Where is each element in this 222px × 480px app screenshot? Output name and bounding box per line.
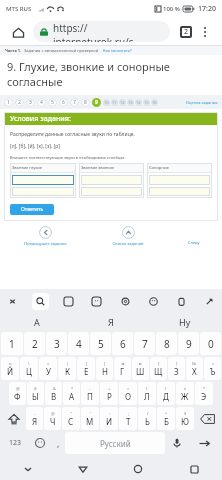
button[interactable]: Tabs: [176, 22, 196, 42]
button[interactable]: ": [62, 407, 80, 430]
button[interactable]: &: [45, 382, 62, 405]
button[interactable]: 4: [37, 98, 46, 107]
button[interactable]: Следу: [188, 240, 200, 245]
button[interactable]: Clipboard: [173, 293, 190, 310]
button[interactable]: }: [168, 357, 185, 380]
button[interactable]: Ну: [148, 313, 222, 330]
button[interactable]: [81, 187, 142, 196]
button[interactable]: Enter: [189, 432, 220, 454]
button[interactable]: А: [0, 313, 74, 330]
button[interactable]: Backspace: [195, 407, 220, 430]
button[interactable]: More options: [196, 23, 214, 41]
button[interactable]: 6: [59, 98, 68, 107]
button[interactable]: *: [63, 382, 80, 405]
button[interactable]: 9: [92, 98, 101, 107]
button[interactable]: Ответить: [10, 204, 54, 215]
button[interactable]: Русский: [65, 432, 165, 454]
button[interactable]: 123: [2, 432, 28, 454]
button[interactable]: $: [176, 407, 194, 430]
staticText: 0: [208, 337, 214, 351]
button[interactable]: Home: [8, 22, 28, 42]
button[interactable]: 8: [81, 98, 90, 107]
button[interactable]: =: [39, 357, 57, 380]
button[interactable]: 9: [178, 332, 199, 355]
staticText: Условия задания:: [10, 114, 71, 124]
button[interactable]: 1: [1, 332, 23, 355]
button[interactable]: Sticker: [88, 293, 105, 310]
button[interactable]: Close: [4, 293, 21, 310]
button[interactable]: Emoji: [28, 432, 52, 454]
button[interactable]: Recents: [166, 458, 222, 480]
button[interactable]: Я: [74, 313, 148, 330]
button[interactable]: \: [20, 357, 38, 380]
button[interactable]: ,: [52, 432, 65, 454]
button[interactable]: 5: [48, 98, 57, 107]
button[interactable]: GIF: [60, 293, 77, 310]
button[interactable]: 14: [135, 99, 142, 106]
button[interactable]: ^: [157, 407, 175, 430]
button[interactable]: /: [138, 407, 156, 430]
button[interactable]: #: [27, 382, 44, 405]
button[interactable]: [149, 175, 210, 185]
button[interactable]: 5: [90, 332, 111, 355]
button[interactable]: 1: [4, 98, 13, 107]
button[interactable]: 2: [15, 98, 24, 107]
button[interactable]: №: [186, 357, 203, 380]
button[interactable]: ): [157, 382, 175, 405]
button[interactable]: Предыдущее задание: [4, 226, 87, 246]
button[interactable]: ]: [96, 357, 113, 380]
button[interactable]: ': [81, 407, 99, 430]
button[interactable]: @: [9, 382, 26, 405]
button[interactable]: ¤: [176, 382, 194, 405]
button[interactable]: 16: [151, 99, 158, 106]
button[interactable]: 12: [119, 99, 126, 106]
button[interactable]: -: [26, 407, 43, 430]
button[interactable]: -: [81, 382, 99, 405]
button[interactable]: @: [44, 407, 61, 430]
button[interactable]: 4: [68, 332, 89, 355]
button[interactable]: Shift: [2, 407, 26, 430]
button[interactable]: Emoji: [145, 293, 162, 310]
button[interactable]: Voice input: [165, 432, 189, 454]
button[interactable]: Settings: [117, 293, 134, 310]
staticText: Ответить: [21, 206, 44, 213]
button[interactable]: ►: [132, 357, 149, 380]
button[interactable]: Hide keyboard: [0, 458, 55, 480]
button[interactable]: 3: [26, 98, 35, 107]
button[interactable]: 7: [70, 98, 79, 107]
button[interactable]: ◄: [114, 357, 131, 380]
button[interactable]: :: [100, 407, 118, 430]
button[interactable]: Home: [110, 458, 166, 480]
button[interactable]: Часть 1.: [5, 46, 217, 55]
button[interactable]: [149, 187, 210, 196]
button[interactable]: [12, 175, 74, 185]
button[interactable]: 15: [143, 99, 150, 106]
button[interactable]: Back: [55, 458, 110, 480]
button[interactable]: ;: [119, 407, 137, 430]
button[interactable]: =: [119, 382, 137, 405]
button[interactable]: ъ: [1, 357, 19, 380]
button[interactable]: Список заданий: [87, 226, 169, 246]
button[interactable]: 3: [46, 332, 67, 355]
button[interactable]: https://interneturok.ru/s: [33, 21, 170, 42]
button[interactable]: 11: [111, 99, 118, 106]
button[interactable]: |: [58, 357, 76, 380]
button[interactable]: (: [138, 382, 156, 405]
button[interactable]: 8: [156, 332, 177, 355]
button[interactable]: 13: [127, 99, 134, 106]
button[interactable]: 2: [24, 332, 45, 355]
button[interactable]: Search: [32, 293, 49, 310]
button[interactable]: {: [150, 357, 167, 380]
button[interactable]: 0: [200, 332, 221, 355]
button[interactable]: 10: [103, 99, 110, 106]
button[interactable]: Pin: [201, 293, 218, 310]
button[interactable]: 6: [112, 332, 133, 355]
button[interactable]: =: [204, 357, 221, 380]
button[interactable]: *: [195, 382, 213, 405]
button[interactable]: 7: [134, 332, 155, 355]
button[interactable]: [: [77, 357, 95, 380]
button[interactable]: [12, 187, 74, 196]
button[interactable]: +: [100, 382, 118, 405]
button[interactable]: [81, 175, 142, 185]
button[interactable]: Оценка задания: [186, 100, 218, 105]
